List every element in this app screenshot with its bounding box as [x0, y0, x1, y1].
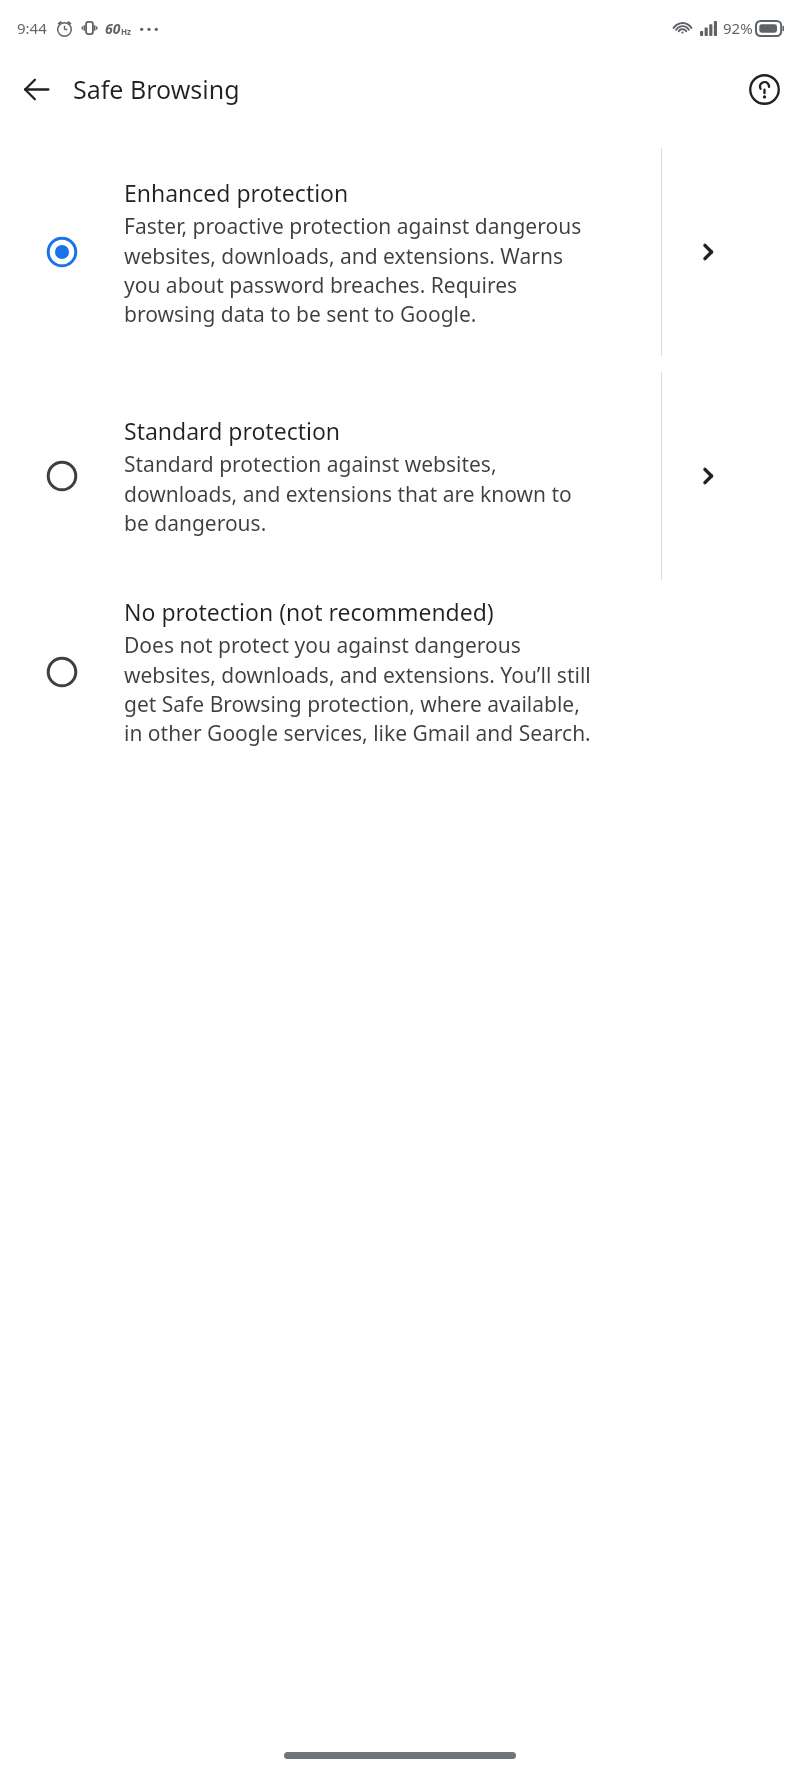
staticText: 92%: [723, 18, 753, 38]
staticText: Faster, proactive protection against dan…: [124, 212, 602, 328]
staticText: No protection (not recommended): [124, 596, 494, 627]
staticText: Standard protection: [124, 415, 341, 446]
staticText: 9:44: [17, 18, 47, 38]
staticText: Standard protection against websites, do…: [124, 450, 602, 537]
button[interactable]: Back: [8, 61, 64, 117]
staticText: Enhanced protection: [124, 177, 349, 208]
button[interactable]: Help: [738, 63, 790, 115]
button[interactable]: Enhanced protection: [0, 140, 800, 364]
button[interactable]: No protection (not recommended): [0, 588, 800, 755]
button[interactable]: Standard protection: [0, 364, 800, 588]
staticText: 60: [105, 19, 121, 38]
staticText: Safe Browsing: [73, 72, 240, 106]
staticText: Hz: [121, 26, 132, 37]
button[interactable]: Open Standard protection settings: [662, 430, 754, 522]
staticText: Does not protect you against dangerous w…: [124, 631, 602, 747]
button[interactable]: Open Enhanced protection settings: [662, 206, 754, 298]
